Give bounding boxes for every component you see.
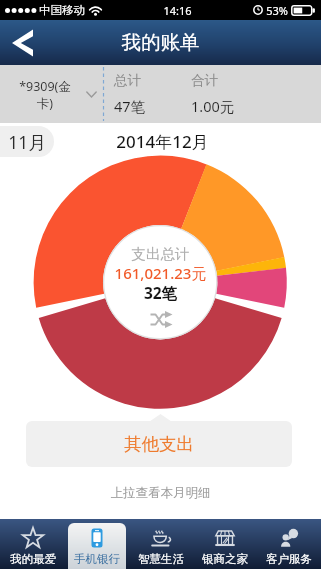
button[interactable]: 银商之家	[196, 523, 254, 569]
staticText: 客户服务	[266, 552, 312, 566]
staticText: 53%	[266, 3, 288, 18]
button[interactable]: 其他支出	[26, 421, 292, 467]
button[interactable]: 客户服务	[260, 523, 318, 569]
staticText: 支出总计	[0, 245, 321, 263]
button[interactable]: 返回	[0, 20, 62, 65]
staticText: *9309(金 卡)	[4, 78, 86, 111]
staticText: 合计	[191, 72, 321, 89]
staticText: 其他支出	[124, 433, 194, 455]
staticText: 上拉查看本月明细	[0, 485, 321, 501]
button[interactable]: *9309(金 卡)	[0, 65, 103, 123]
staticText: 银商之家	[202, 552, 248, 566]
staticText: 14:16	[163, 3, 192, 18]
button[interactable]: 我的最爱	[3, 523, 62, 569]
staticText: 161,021.23元	[0, 263, 321, 283]
staticText: 32笔	[0, 282, 321, 303]
staticText: 1.00元	[191, 96, 321, 116]
button[interactable]: 11月	[0, 126, 54, 157]
staticText: 总计	[114, 72, 182, 89]
button[interactable]: 智慧生活	[132, 523, 190, 569]
staticText: 中国移动	[39, 3, 85, 17]
staticText: 我的账单	[0, 30, 321, 55]
staticText: 11月	[8, 130, 46, 154]
staticText: 手机银行	[74, 552, 120, 566]
staticText: 2014年12月	[2, 130, 321, 153]
staticText: 47笔	[114, 96, 182, 116]
staticText: 智慧生活	[138, 552, 184, 566]
staticText: 我的最爱	[10, 552, 56, 566]
button[interactable]: 手机银行	[68, 523, 126, 569]
